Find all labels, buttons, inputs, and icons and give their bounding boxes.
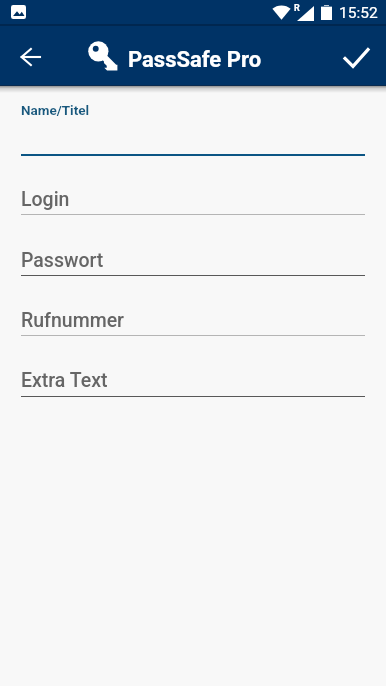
staticText: Passwort <box>21 249 104 272</box>
button[interactable]: Rufnummer <box>21 309 365 343</box>
button[interactable]: Passwort <box>21 249 365 283</box>
button[interactable]: Save <box>334 36 378 80</box>
staticText: PassSafe Pro <box>128 47 262 73</box>
button[interactable]: Extra Text <box>21 369 365 403</box>
button[interactable]: Navigate up <box>8 35 52 79</box>
staticText: Login <box>21 188 70 211</box>
staticText: R <box>294 3 300 14</box>
button[interactable]: Name/Titel <box>21 96 365 158</box>
staticText: Rufnummer <box>21 309 125 332</box>
staticText: Name/Titel <box>21 102 90 118</box>
staticText: 15:52 <box>339 4 378 22</box>
staticText: Extra Text <box>21 369 108 392</box>
button[interactable]: Login <box>21 188 365 222</box>
